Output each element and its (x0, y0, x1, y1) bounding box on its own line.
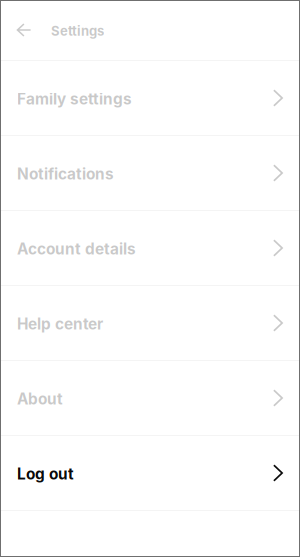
staticText: About (17, 390, 63, 408)
button[interactable]: Help center (0, 286, 300, 360)
staticText: Log out (17, 465, 74, 483)
staticText: Settings (51, 23, 104, 39)
button[interactable]: Log out (0, 436, 300, 510)
button[interactable]: Back (10, 8, 38, 52)
button[interactable]: About (0, 361, 300, 435)
button[interactable]: Account details (0, 211, 300, 285)
button[interactable]: Notifications (0, 136, 300, 210)
staticText: Help center (17, 315, 103, 333)
button[interactable]: Family settings (0, 61, 300, 135)
staticText: Family settings (17, 90, 132, 108)
staticText: Account details (17, 240, 136, 258)
staticText: Notifications (17, 165, 114, 183)
